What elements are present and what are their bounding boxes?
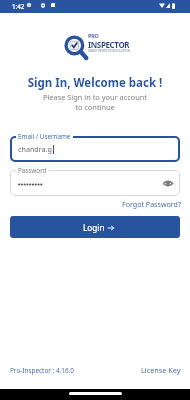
button[interactable]: Forgot Password? — [0, 199, 181, 209]
staticText: 1:42 — [12, 2, 25, 10]
staticText: chandra.g — [18, 144, 52, 154]
button[interactable]: Login — [10, 216, 180, 238]
button[interactable]: Show password — [10, 170, 180, 196]
button[interactable]: chandra.g — [10, 136, 180, 162]
staticText: PRO — [88, 32, 99, 39]
staticText: Pro-Inspector : 4.16.0 — [10, 366, 74, 375]
staticText: INSPECTOR — [88, 39, 130, 50]
staticText: Sign In, Welcome back ! — [0, 75, 190, 91]
staticText: Login — [83, 222, 105, 233]
staticText: SMART INSPECTION SOLUTION — [88, 49, 130, 53]
staticText: Email / Username — [18, 132, 71, 141]
staticText: Password — [18, 166, 47, 175]
staticText: Please Sign in to your account to contin… — [0, 92, 190, 112]
button[interactable]: License Key — [141, 365, 181, 375]
other: Show password — [163, 180, 173, 187]
